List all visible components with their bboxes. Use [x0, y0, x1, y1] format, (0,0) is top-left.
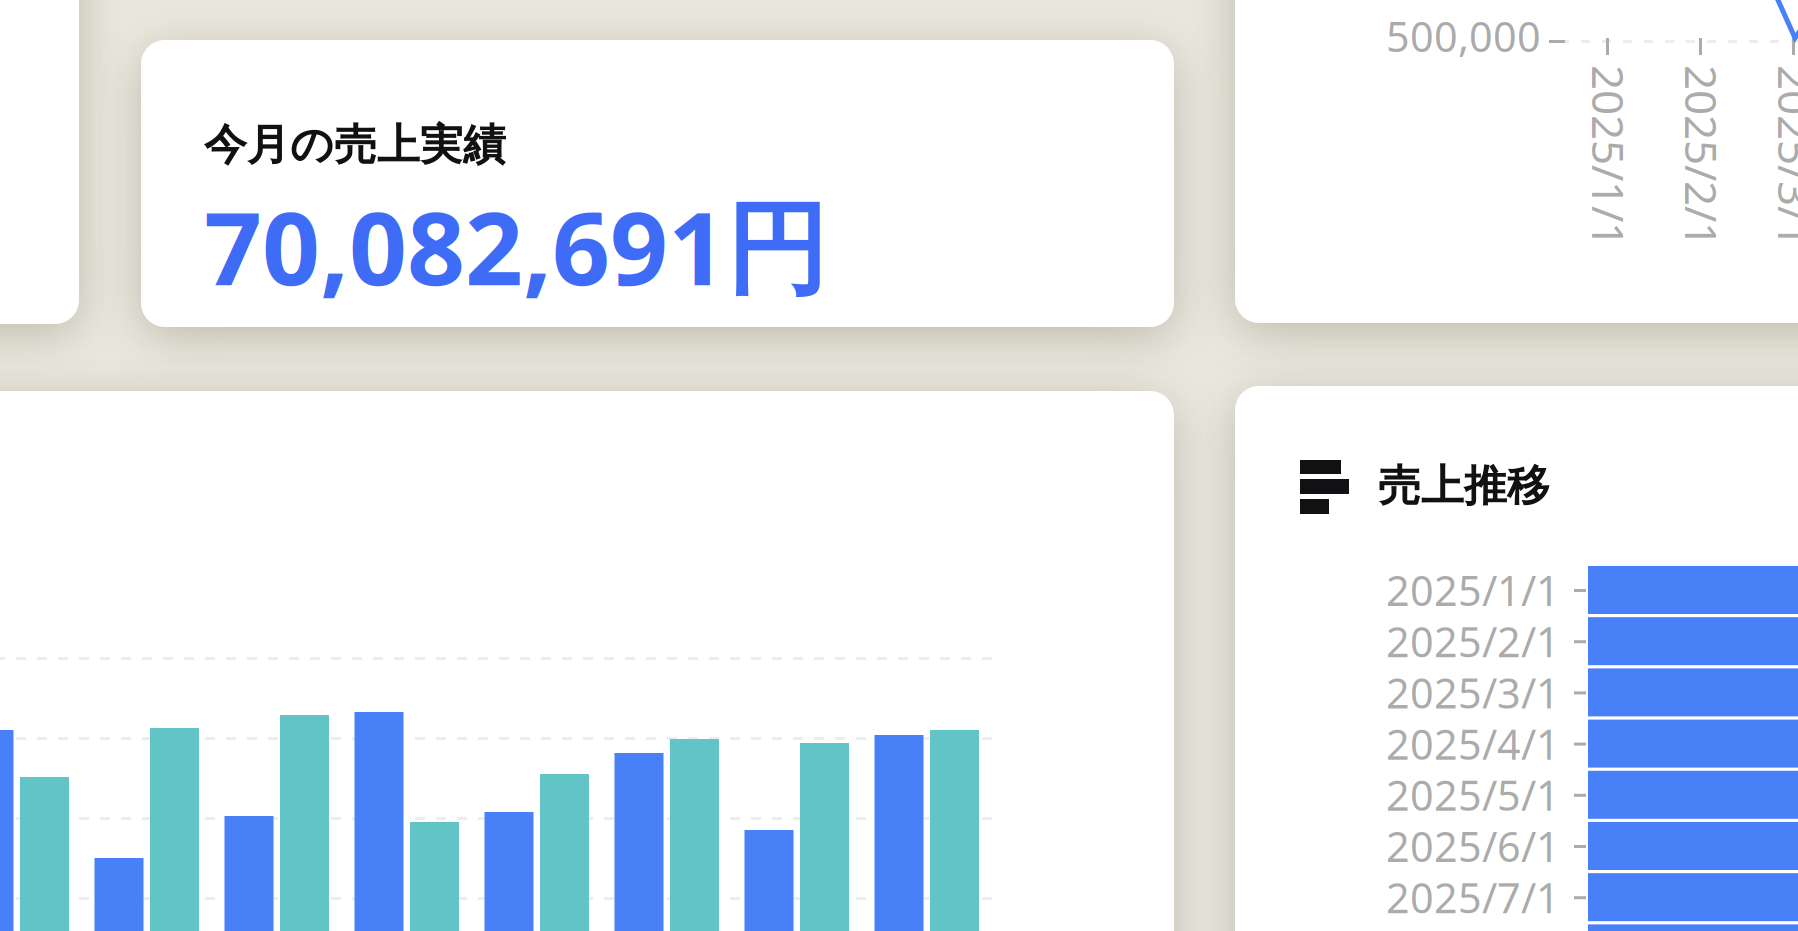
staticText: 2025/5/1 [1386, 767, 1560, 822]
staticText: 今月の売上実績 [204, 119, 506, 171]
staticText: 2025/1/1 [1509, 136, 1691, 194]
staticText: 2025/2/1 [1602, 136, 1784, 194]
staticText: 2025/4/1 [1386, 716, 1560, 771]
staticText: 70,082,691円 [204, 179, 827, 313]
staticText: 2025/3/1 [1386, 665, 1560, 720]
button[interactable]: 今月の売上実績 [141, 40, 1174, 329]
staticText: 2025/3/1 [1695, 136, 1798, 194]
button[interactable]: 売上推移 [1235, 386, 1555, 446]
staticText: 2025/7/1 [1386, 870, 1560, 925]
staticText: 500,000 [1386, 9, 1541, 63]
staticText: 売上推移 [1378, 460, 1550, 512]
staticText: 2025/2/1 [1386, 614, 1560, 669]
staticText: 2025/6/1 [1386, 819, 1560, 873]
staticText: 2025/1/1 [1386, 563, 1560, 617]
